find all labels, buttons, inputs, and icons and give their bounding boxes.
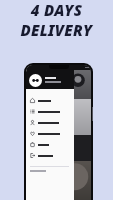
staticText: 4 DAYS DELIVERY [0, 0, 113, 36]
button[interactable]: HOME [26, 95, 74, 106]
button[interactable]: Profile [26, 65, 74, 89]
button[interactable]: MY WISHLIST [26, 128, 74, 139]
button[interactable]: CATEGORIES [26, 106, 74, 117]
button[interactable]: CART [26, 139, 74, 150]
button[interactable]: LOG OUT [26, 150, 74, 161]
button[interactable]: MY ACCOUNT [26, 117, 74, 128]
